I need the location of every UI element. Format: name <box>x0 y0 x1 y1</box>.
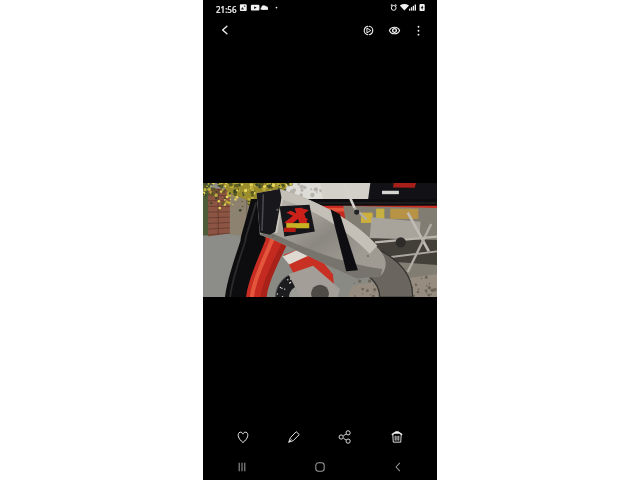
staticText: 21:56 <box>216 4 237 15</box>
button[interactable]: Show details <box>381 17 407 43</box>
button[interactable]: More options <box>407 19 429 41</box>
button[interactable]: Edit <box>268 420 319 454</box>
button[interactable]: Share <box>319 420 371 454</box>
button[interactable]: Back <box>359 454 437 480</box>
button[interactable]: Recents <box>203 454 281 480</box>
button[interactable]: Back <box>212 17 238 43</box>
button[interactable]: Motion photo <box>355 17 381 43</box>
button[interactable]: Home <box>281 454 359 480</box>
button[interactable]: Delete <box>371 420 423 454</box>
button[interactable]: Favourite <box>217 420 268 454</box>
